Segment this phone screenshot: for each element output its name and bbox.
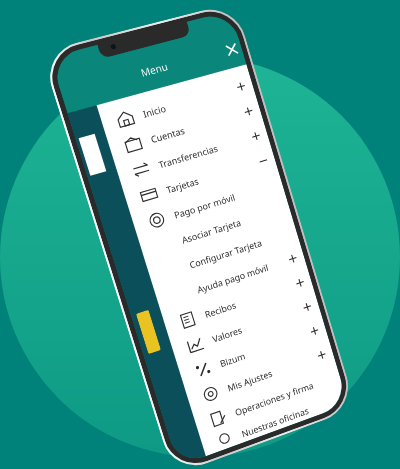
button[interactable]: Recibos xyxy=(162,267,314,340)
staticText: Pago por móvil xyxy=(172,191,236,221)
button[interactable]: Valores xyxy=(170,291,322,365)
staticText: Configurar Tarjeta xyxy=(188,236,263,270)
staticText: Mis Ajustes xyxy=(226,367,274,394)
button[interactable]: Operaciones y firma xyxy=(193,363,343,438)
staticText: Cuentas xyxy=(149,124,186,145)
staticText: Recibos xyxy=(203,298,238,320)
staticText: Menu xyxy=(139,59,170,80)
button[interactable]: Transferencias xyxy=(115,121,271,189)
button[interactable]: Mis Ajustes xyxy=(185,339,336,414)
staticText: Asociar Tarjeta xyxy=(180,216,243,246)
staticText: Inicio xyxy=(141,101,168,120)
staticText: Transferencias xyxy=(157,141,220,170)
button[interactable]: Cuentas xyxy=(107,96,263,163)
staticText: Operaciones y firma xyxy=(233,379,315,418)
button[interactable]: Ayuda pago móvil xyxy=(154,243,307,315)
staticText: Valores xyxy=(211,323,243,345)
button[interactable]: Nuestras oficinas xyxy=(200,387,348,456)
button[interactable]: Asociar Tarjeta xyxy=(138,194,293,265)
staticText: Bizum xyxy=(218,349,247,369)
button[interactable]: Close xyxy=(220,38,243,61)
staticText: Nuestras oficinas xyxy=(240,404,310,439)
button[interactable]: Inicio xyxy=(99,71,256,138)
button[interactable]: Tarjetas xyxy=(123,145,278,214)
button[interactable]: Bizum xyxy=(177,315,329,389)
button[interactable]: Pago por móvil xyxy=(130,170,285,240)
button[interactable]: Configurar Tarjeta xyxy=(146,219,300,290)
staticText: Tarjetas xyxy=(165,174,201,196)
staticText: Ayuda pago móvil xyxy=(195,261,270,295)
